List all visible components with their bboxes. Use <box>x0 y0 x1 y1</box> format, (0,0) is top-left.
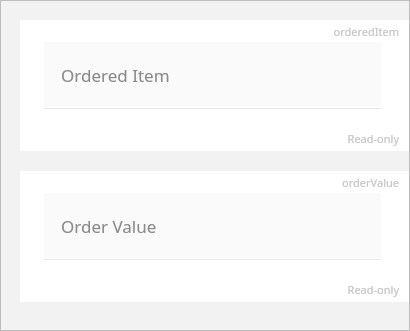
staticText: Ordered Item <box>61 64 170 87</box>
staticText: orderedItem <box>20 24 399 39</box>
button[interactable]: Ordered Item <box>44 42 381 109</box>
staticText: Order Value <box>61 215 157 238</box>
staticText: orderValue <box>20 175 399 190</box>
staticText: Read-only <box>20 131 399 146</box>
staticText: Read-only <box>20 282 399 297</box>
button[interactable]: Order Value <box>44 193 381 260</box>
